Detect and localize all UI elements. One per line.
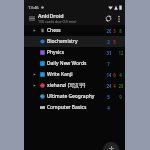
staticText: 3 [113, 28, 116, 34]
staticText: 4 [119, 72, 122, 78]
staticText: 2 [107, 39, 110, 45]
button[interactable]: More options [114, 12, 123, 25]
staticText: 7 [107, 61, 110, 67]
button[interactable]: Computer Basics [24, 102, 125, 113]
staticText: Write Kanji [47, 71, 106, 78]
staticText: 20 [106, 28, 111, 34]
button[interactable]: Physics [24, 47, 125, 58]
staticText: Chess [47, 27, 106, 34]
staticText: 28 [118, 83, 123, 89]
staticText: 12 [118, 50, 123, 56]
button[interactable]: Sync [102, 12, 114, 25]
staticText: 9 [119, 94, 122, 100]
button[interactable]: Ultimate Geography [24, 91, 125, 102]
staticText: 24 [106, 83, 111, 89]
staticText: 8 [119, 28, 122, 34]
staticText: AnkiDroid [38, 12, 64, 19]
staticText: 6 [113, 72, 116, 78]
button[interactable]: Chess [24, 25, 125, 36]
staticText: 14 [106, 72, 111, 78]
staticText: 5 [113, 39, 116, 45]
staticText: 31 [106, 50, 111, 56]
staticText: Computer Basics [47, 104, 106, 111]
button[interactable]: Add deck [103, 142, 119, 150]
button[interactable]: Daily New Words [24, 58, 125, 69]
staticText: 13:46 [28, 5, 39, 11]
staticText: xiehanzi (写汉字) [47, 82, 106, 89]
button[interactable]: Open navigation drawer [24, 12, 38, 25]
staticText: 5 [107, 94, 110, 100]
staticText: 150 cards due (50 min) [38, 19, 77, 24]
staticText: Physics [47, 49, 106, 56]
button[interactable]: Write Kanji [24, 69, 125, 80]
staticText: Ultimate Geography [47, 93, 106, 100]
staticText: 4 [113, 83, 116, 89]
staticText: 4 [107, 105, 110, 111]
button[interactable]: Biochemistry [24, 36, 125, 47]
staticText: Daily New Words [47, 60, 106, 67]
button[interactable]: xiehanzi (写汉字) [24, 80, 125, 91]
staticText: Biochemistry [47, 38, 106, 45]
